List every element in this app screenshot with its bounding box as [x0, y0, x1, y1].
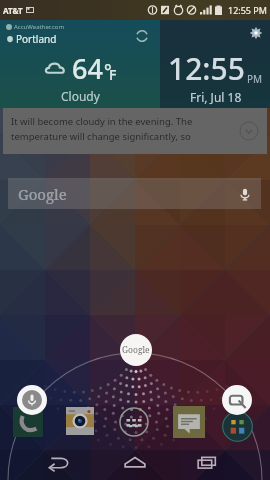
staticText: Cloudy: [61, 88, 100, 104]
staticText: AT&T: [3, 5, 23, 16]
staticText: Portland: [16, 32, 57, 46]
staticText: Google: [18, 184, 67, 204]
button[interactable]: Settings: [160, 20, 270, 108]
staticText: PM: [247, 72, 263, 86]
button[interactable]: AccuWeather.com: [0, 20, 160, 108]
button[interactable]: Camera: [66, 407, 94, 435]
button[interactable]: Recent apps: [186, 448, 228, 476]
staticText: °: [104, 59, 112, 84]
staticText: Fri, Jul 18: [190, 89, 242, 105]
button[interactable]: Settings: [249, 26, 263, 40]
button[interactable]: Expand: [239, 121, 259, 141]
button[interactable]: Home: [114, 448, 156, 476]
button[interactable]: Google: [120, 334, 152, 366]
staticText: 64: [72, 50, 103, 87]
button[interactable]: Refresh: [134, 28, 150, 44]
button[interactable]: Apps: [119, 407, 149, 437]
button[interactable]: Phone: [13, 407, 43, 437]
button[interactable]: Google: [8, 178, 261, 209]
button[interactable]: Folder: [222, 411, 253, 442]
staticText: 12:55 PM: [228, 4, 267, 16]
staticText: Google: [122, 344, 150, 356]
button[interactable]: Voice search: [17, 385, 47, 415]
button[interactable]: It will become cloudy in the evening. Th…: [3, 108, 267, 154]
staticText: 12:55: [168, 48, 245, 89]
button[interactable]: Voice search: [237, 186, 253, 202]
staticText: AccuWeather.com: [14, 23, 65, 31]
button[interactable]: Screen search: [222, 385, 252, 415]
staticText: F: [109, 65, 117, 84]
staticText: It will become cloudy in the evening. Th…: [11, 115, 193, 143]
button[interactable]: Messages: [173, 406, 205, 438]
button[interactable]: Back: [37, 448, 79, 476]
